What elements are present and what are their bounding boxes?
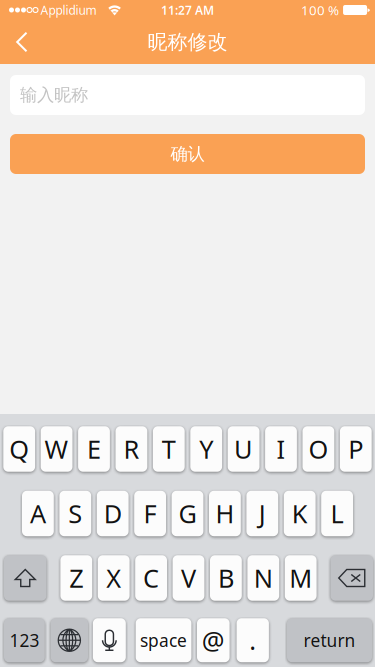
staticText: D (104, 497, 122, 530)
button[interactable]: L (321, 491, 353, 536)
button[interactable]: S (59, 491, 91, 536)
button[interactable]: B (210, 555, 242, 601)
button[interactable]: E (78, 426, 110, 472)
button[interactable]: space (136, 618, 191, 662)
button[interactable]: J (246, 491, 278, 536)
button[interactable]: A (22, 491, 54, 536)
button[interactable]: R (115, 426, 147, 472)
button[interactable]: Back (0, 20, 44, 64)
staticText: W (45, 432, 69, 466)
button[interactable]: Dictate (93, 618, 126, 662)
button[interactable]: V (173, 555, 204, 601)
button[interactable]: U (228, 426, 259, 472)
button[interactable]: X (98, 555, 130, 601)
staticText: H (215, 497, 234, 530)
staticText: E (87, 432, 101, 466)
button[interactable]: @ (197, 618, 230, 662)
staticText: X (106, 561, 121, 595)
button[interactable]: Y (190, 426, 222, 472)
staticText: Applidium (40, 2, 96, 18)
button[interactable]: 确认 (10, 134, 365, 174)
button[interactable]: 123 (4, 618, 45, 662)
staticText: V (181, 561, 196, 595)
staticText: I (276, 432, 285, 466)
staticText: F (144, 497, 157, 530)
staticText: K (292, 497, 308, 530)
button[interactable]: O (302, 426, 334, 472)
staticText: B (218, 561, 234, 595)
button[interactable]: D (97, 491, 129, 536)
staticText: 确认 (170, 143, 204, 165)
staticText: space (140, 629, 187, 652)
staticText: J (259, 497, 266, 530)
staticText: N (254, 561, 273, 595)
button[interactable]: Next keyboard (51, 618, 88, 662)
button[interactable]: N (247, 555, 279, 601)
button[interactable]: W (41, 426, 72, 472)
button[interactable]: I (265, 426, 297, 472)
staticText: P (348, 432, 363, 466)
staticText: Y (199, 432, 213, 466)
staticText: U (234, 432, 253, 466)
staticText: O (308, 432, 328, 466)
button[interactable]: return (287, 618, 372, 662)
button[interactable]: C (135, 555, 167, 601)
button[interactable]: Q (3, 426, 35, 472)
button[interactable]: M (285, 555, 317, 601)
button[interactable]: F (134, 491, 166, 536)
button[interactable]: Shift (4, 555, 46, 601)
staticText: . (249, 623, 256, 657)
button[interactable]: G (172, 491, 203, 536)
button[interactable]: T (153, 426, 185, 472)
button[interactable]: P (340, 426, 372, 472)
staticText: A (30, 497, 46, 530)
staticText: M (289, 561, 312, 595)
staticText: T (162, 432, 176, 466)
staticText: 11:27 AM (161, 2, 214, 18)
staticText: Q (9, 432, 29, 466)
staticText: 昵称修改 (147, 30, 227, 54)
staticText: 100 % (301, 1, 339, 19)
staticText: S (68, 497, 82, 530)
button[interactable]: K (284, 491, 316, 536)
button[interactable]: . (237, 618, 269, 662)
staticText: C (143, 561, 159, 595)
staticText: return (303, 629, 355, 652)
staticText: R (123, 432, 139, 466)
staticText: L (331, 497, 344, 530)
staticText: 123 (9, 629, 39, 652)
staticText: 输入昵称 (20, 84, 88, 106)
button[interactable]: Z (60, 555, 92, 601)
button[interactable]: H (209, 491, 241, 536)
staticText: @ (202, 623, 225, 657)
staticText: Z (69, 561, 83, 595)
staticText: G (178, 497, 196, 530)
button[interactable]: Delete (330, 555, 373, 601)
